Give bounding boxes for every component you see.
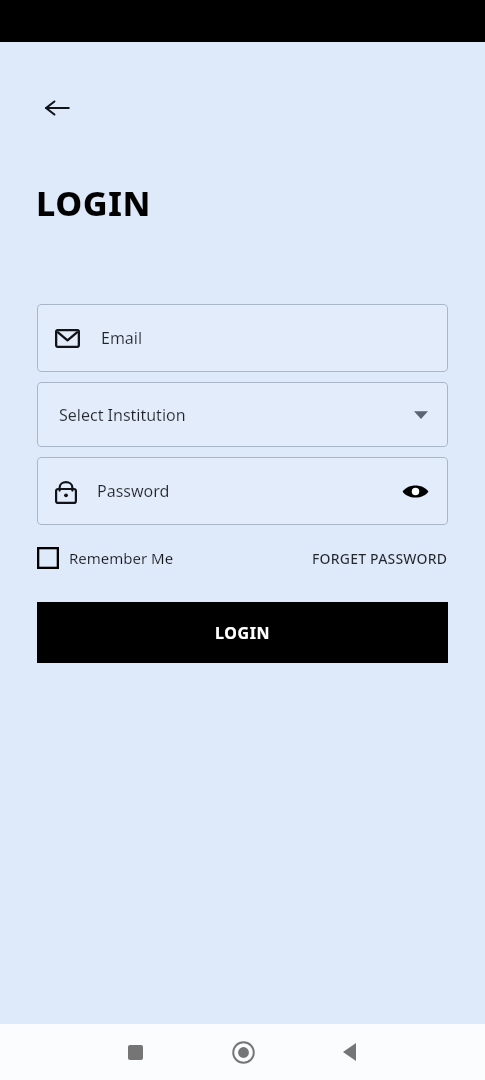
button[interactable]: Home [219,1028,267,1076]
button[interactable]: Remember Me [37,547,174,569]
staticText: LOGIN [36,180,152,226]
button[interactable]: FORGET PASSWORD [312,549,448,568]
button[interactable]: Show password [398,474,432,508]
staticText: Select Institution [59,404,414,426]
staticText: Email [101,327,143,349]
button[interactable]: LOGIN [37,602,448,663]
staticText: FORGET PASSWORD [312,549,448,568]
button[interactable]: Email [37,304,448,372]
button[interactable]: Select Institution [37,382,448,447]
button[interactable]: Password [37,457,448,525]
staticText: Password [97,480,398,502]
button[interactable]: Back [325,1028,373,1076]
staticText: LOGIN [215,622,271,644]
staticText: Remember Me [69,548,174,568]
button[interactable]: Back [33,84,81,132]
button[interactable]: Recent apps [111,1028,159,1076]
